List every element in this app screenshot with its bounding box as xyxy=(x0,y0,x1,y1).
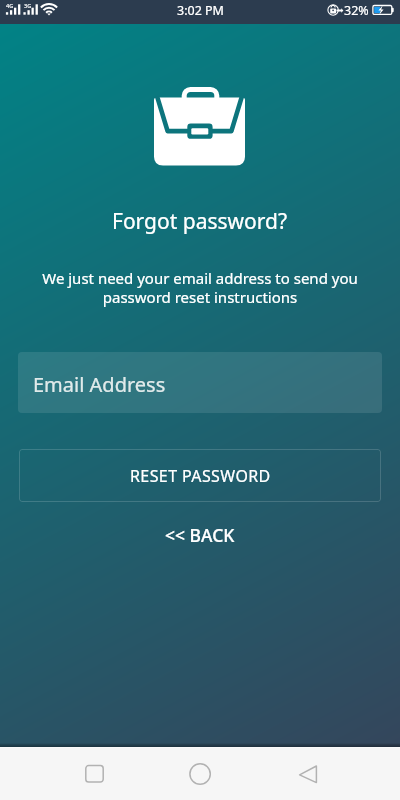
staticText: Email Address xyxy=(33,371,166,398)
staticText: 3:02 PM xyxy=(177,2,224,19)
staticText: 3G xyxy=(24,2,32,9)
button[interactable]: Email Address xyxy=(18,352,382,413)
staticText: << BACK xyxy=(165,523,235,547)
staticText: We just need your email address to send … xyxy=(38,268,362,308)
button[interactable]: Recent apps xyxy=(70,750,119,799)
staticText: RESET PASSWORD xyxy=(130,465,271,487)
button[interactable]: << BACK xyxy=(145,518,255,552)
staticText: 32% xyxy=(344,2,369,19)
staticText: 4G xyxy=(6,2,14,9)
button[interactable]: Back xyxy=(283,750,332,799)
button[interactable]: Home xyxy=(175,750,224,799)
button[interactable]: RESET PASSWORD xyxy=(19,449,381,502)
staticText: Forgot password? xyxy=(112,207,288,236)
